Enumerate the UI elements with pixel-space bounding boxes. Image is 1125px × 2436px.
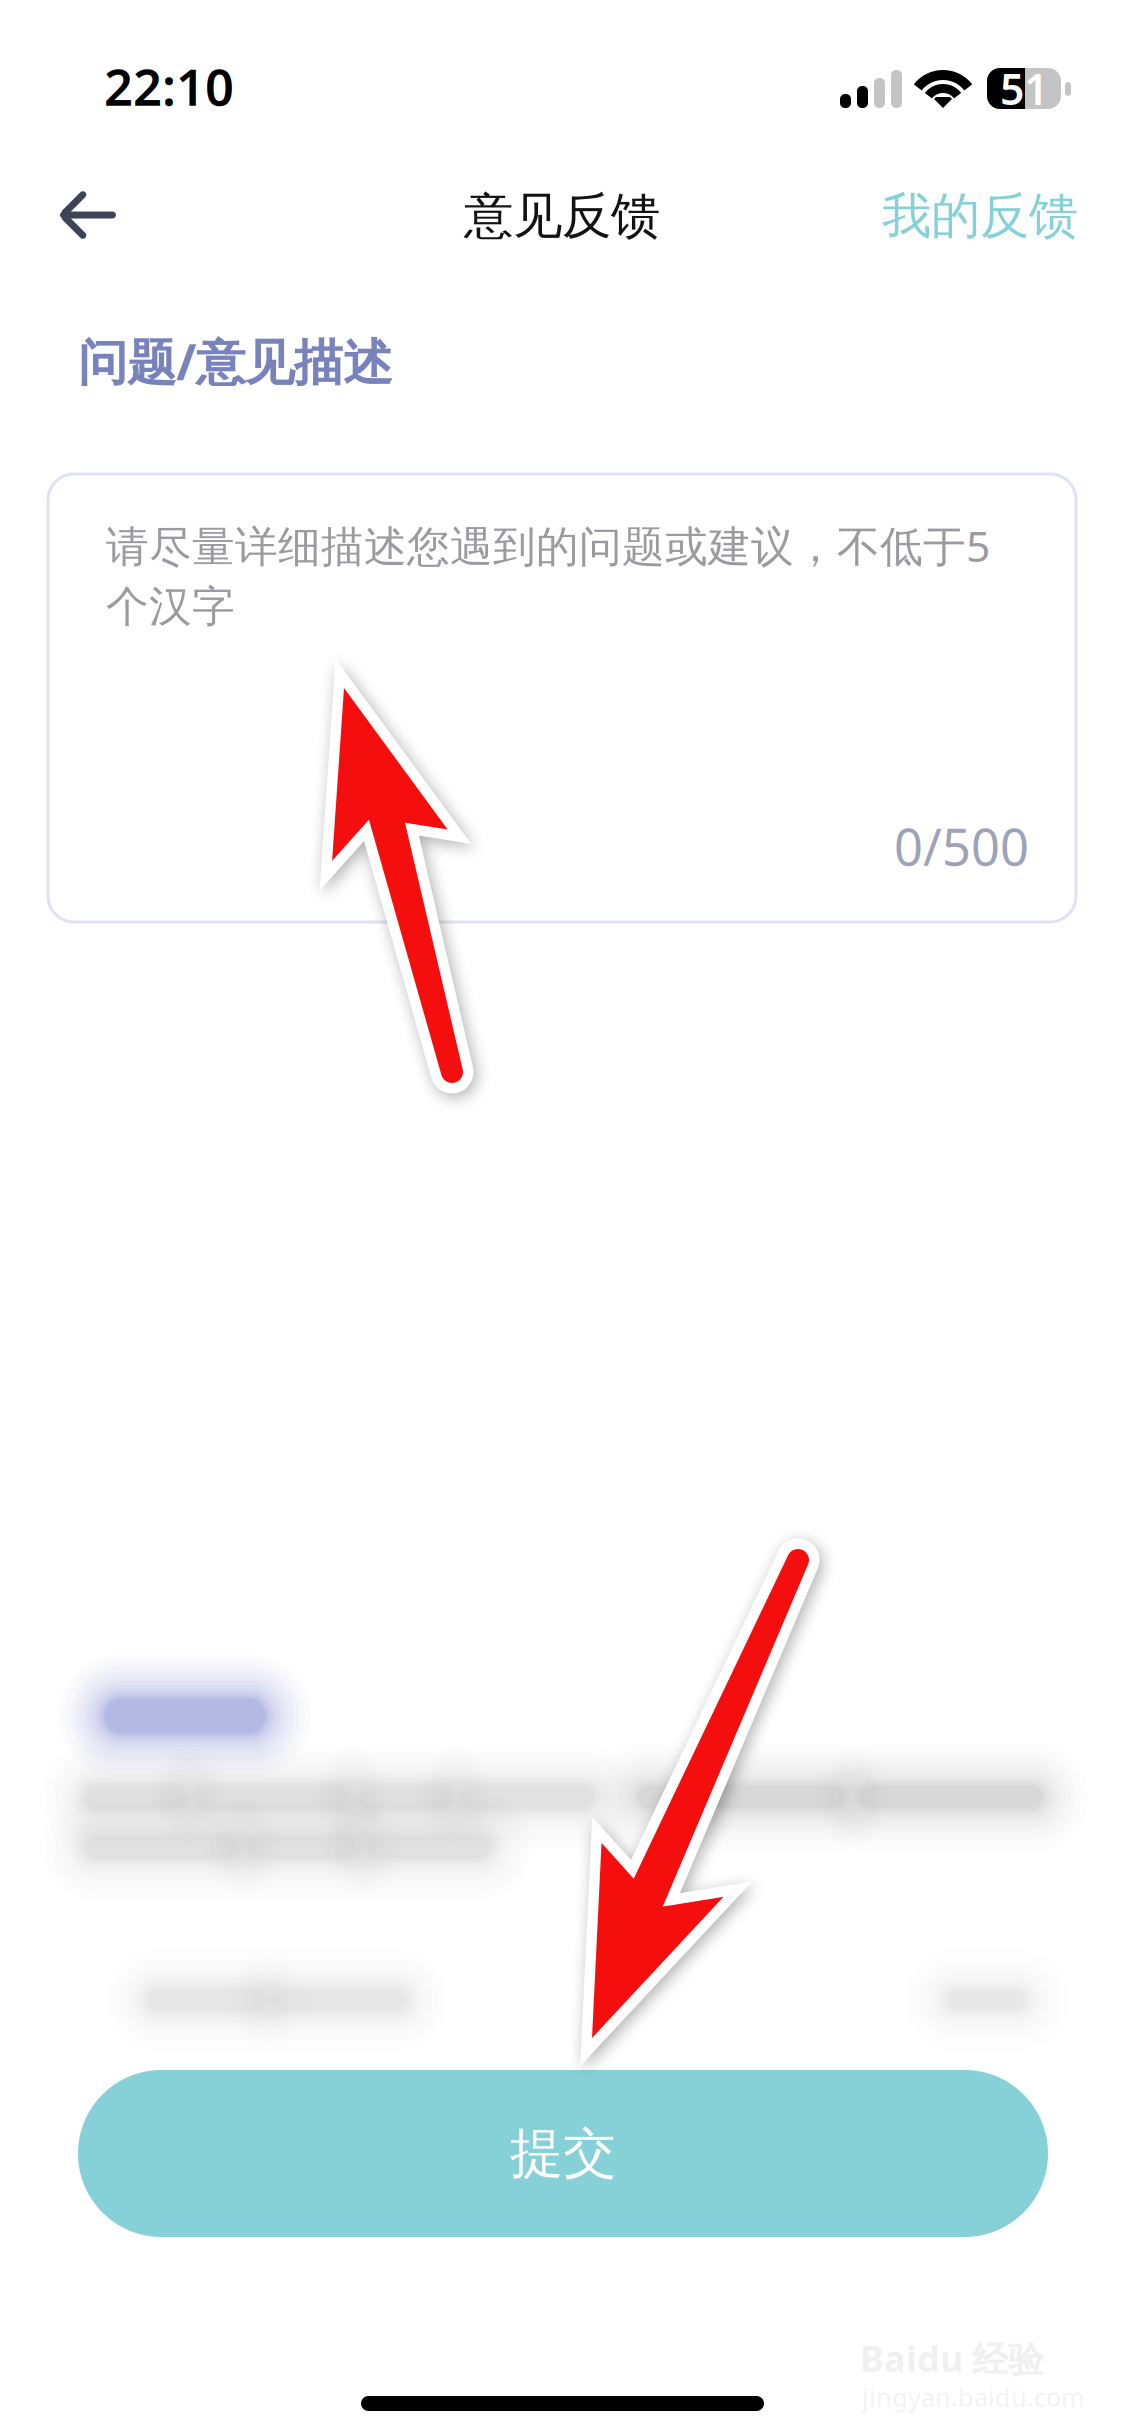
- button[interactable]: Back: [28, 170, 150, 260]
- button[interactable]: 我的反馈: [849, 180, 1111, 252]
- staticText: jingyan.baidu.com: [862, 2380, 1085, 2414]
- staticText: 问题/意见描述: [78, 328, 392, 394]
- staticText: 我的反馈: [882, 186, 1078, 246]
- staticText: 请尽量详细描述您遇到的问题或建议，不低于5个汉字: [106, 517, 990, 633]
- staticText: Baidu 经验: [860, 2334, 1044, 2382]
- staticText: 51: [1000, 60, 1048, 117]
- staticText: 0/500: [894, 812, 1029, 880]
- staticText: 意见反馈: [464, 186, 660, 246]
- staticText: 22:10: [104, 52, 234, 120]
- staticText: 提交: [510, 2121, 616, 2186]
- button[interactable]: 提交: [78, 2070, 1048, 2237]
